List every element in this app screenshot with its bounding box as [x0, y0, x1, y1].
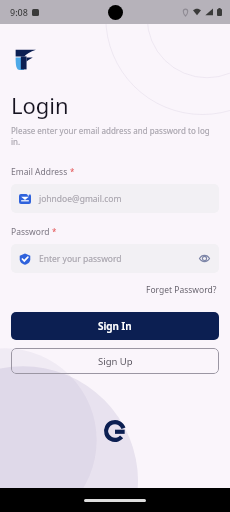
staticText: Enter your password [39, 253, 198, 265]
button[interactable]: Sign In [11, 312, 219, 340]
button[interactable]: Sign Up [11, 348, 219, 374]
button[interactable]: Enter your password [11, 244, 219, 273]
button[interactable]: Show password [198, 252, 211, 265]
staticText: Password [11, 226, 50, 238]
button[interactable]: Forget Password? [144, 282, 219, 298]
staticText: johndoe@gmail.com [39, 193, 211, 205]
button[interactable]: Sign in with Google [98, 414, 132, 448]
staticText: * [70, 166, 75, 177]
button[interactable]: johndoe@gmail.com [11, 184, 219, 213]
staticText: Login [11, 90, 69, 120]
staticText: Please enter your email address and pass… [11, 125, 218, 147]
staticText: Sign Up [98, 355, 133, 368]
staticText: 9:08 [10, 6, 28, 18]
staticText: * [52, 226, 57, 237]
staticText: Forget Password? [146, 284, 217, 296]
staticText: Sign In [98, 319, 132, 333]
staticText: Email Address [11, 166, 68, 178]
